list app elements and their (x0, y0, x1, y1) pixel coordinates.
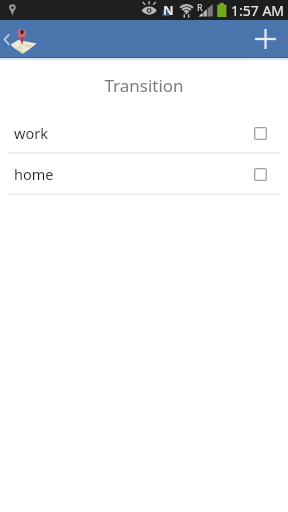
staticText: Transition (0, 74, 288, 97)
button[interactable]: Add (246, 20, 284, 58)
staticText: work (14, 123, 48, 143)
staticText: 1:57 AM (231, 1, 285, 20)
button[interactable]: Navigate up (0, 20, 40, 58)
button[interactable]: work (0, 113, 288, 152)
staticText: R (197, 1, 203, 13)
staticText: N (163, 1, 174, 19)
button[interactable]: home (0, 154, 288, 193)
staticText: home (14, 164, 54, 184)
